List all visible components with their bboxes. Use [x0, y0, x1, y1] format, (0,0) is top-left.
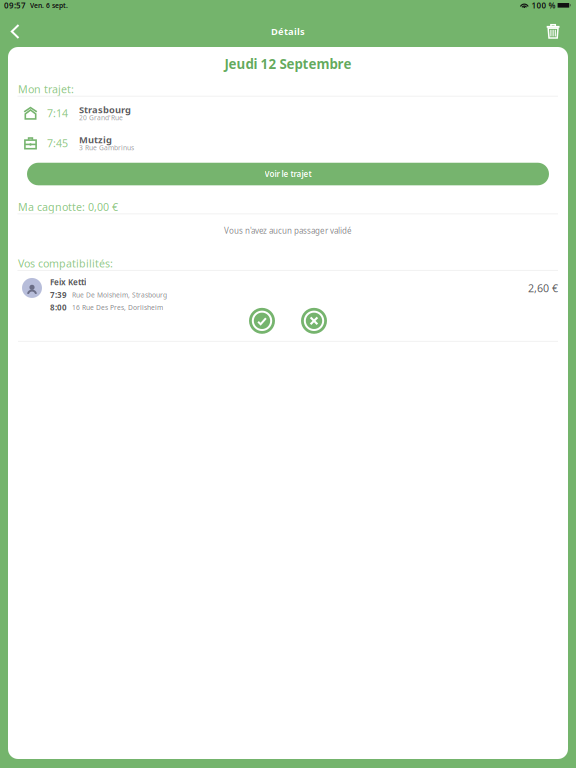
staticText: Vos compatibilités: — [18, 256, 113, 271]
staticText: Vous n'avez aucun passager validé — [224, 225, 352, 236]
button[interactable]: Accept — [249, 308, 275, 334]
staticText: 100 % — [532, 0, 556, 11]
staticText: 3 Rue Gambrinus — [79, 143, 134, 152]
staticText: 09:57 — [4, 0, 26, 11]
staticText: 2,60 € — [528, 281, 558, 295]
staticText: Voir le trajet — [264, 169, 311, 179]
staticText: Jeudi 12 Septembre — [224, 55, 351, 73]
staticText: Mutzig — [79, 133, 112, 146]
staticText: Détails — [271, 25, 305, 38]
staticText: Strasbourg — [79, 103, 131, 116]
button[interactable]: Back — [0, 17, 30, 45]
staticText: 16 Rue Des Pres, Dorlisheim — [72, 303, 163, 312]
staticText: 20 Grand'Rue — [79, 113, 123, 122]
button[interactable]: Delete — [538, 17, 568, 45]
staticText: Ven. 6 sept. — [30, 1, 68, 10]
staticText: Mon trajet: — [18, 82, 74, 96]
staticText: 7:39 — [50, 290, 67, 300]
staticText: Rue De Molsheim, Strasbourg — [72, 290, 167, 299]
staticText: 7:14 — [47, 106, 68, 120]
staticText: 8:00 — [50, 302, 67, 313]
staticText: Feix Ketti — [50, 277, 86, 288]
staticText: Ma cagnotte: 0,00 € — [18, 200, 118, 214]
button[interactable]: Voir le trajet — [27, 163, 549, 185]
staticText: 7:45 — [47, 136, 68, 150]
button[interactable]: Decline — [301, 308, 327, 334]
